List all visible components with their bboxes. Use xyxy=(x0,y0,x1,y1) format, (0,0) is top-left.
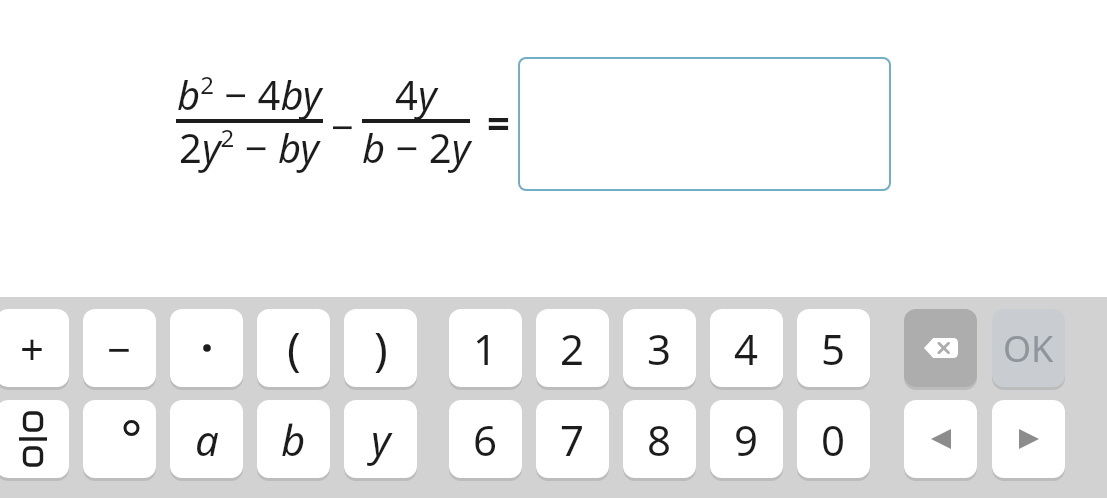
staticText: 7 xyxy=(560,411,585,468)
button[interactable]: 6 xyxy=(449,400,522,478)
button[interactable]: 0 xyxy=(797,400,870,478)
button[interactable]: − xyxy=(83,309,156,387)
button[interactable]: y xyxy=(344,400,417,478)
staticText: − xyxy=(331,99,354,151)
staticText: = xyxy=(487,95,510,147)
button[interactable] xyxy=(992,400,1065,478)
staticText: 0 xyxy=(821,411,846,468)
staticText: 3 xyxy=(647,320,672,377)
button[interactable]: b xyxy=(257,400,330,478)
button[interactable]: 2 xyxy=(536,309,609,387)
button[interactable]: 4 xyxy=(710,309,783,387)
button[interactable]: 8 xyxy=(623,400,696,478)
staticText: ) xyxy=(374,317,388,380)
button[interactable] xyxy=(904,400,977,478)
staticText: 9 xyxy=(734,411,759,468)
staticText: a xyxy=(195,411,219,468)
button[interactable]: 7 xyxy=(536,400,609,478)
button[interactable] xyxy=(170,309,243,387)
button[interactable]: a xyxy=(170,400,243,478)
button[interactable]: 5 xyxy=(797,309,870,387)
staticText: 8 xyxy=(647,411,672,468)
staticText: 4 xyxy=(734,320,759,377)
button[interactable]: ) xyxy=(344,309,417,387)
button[interactable] xyxy=(83,400,156,478)
staticText: y xyxy=(371,411,391,468)
button[interactable] xyxy=(518,57,891,191)
staticText: 6 xyxy=(473,411,498,468)
button[interactable]: 3 xyxy=(623,309,696,387)
button[interactable]: 9 xyxy=(710,400,783,478)
staticText: 4y xyxy=(395,67,437,121)
staticText: 1 xyxy=(473,320,498,377)
staticText: b − 2y xyxy=(362,120,471,174)
staticText: b2 − 4by xyxy=(177,67,322,121)
staticText: − xyxy=(107,320,132,377)
button[interactable] xyxy=(0,400,69,478)
staticText: b xyxy=(281,411,306,468)
staticText: 2 xyxy=(560,320,585,377)
staticText: 5 xyxy=(821,320,846,377)
staticText: 2y2 − by xyxy=(179,120,320,174)
button[interactable] xyxy=(904,309,977,387)
button[interactable]: ( xyxy=(257,309,330,387)
staticText: OK xyxy=(1003,324,1054,373)
button[interactable]: 1 xyxy=(449,309,522,387)
staticText: ( xyxy=(287,317,301,380)
staticText: + xyxy=(20,320,45,377)
button[interactable]: OK xyxy=(992,309,1065,387)
button[interactable]: + xyxy=(0,309,69,387)
